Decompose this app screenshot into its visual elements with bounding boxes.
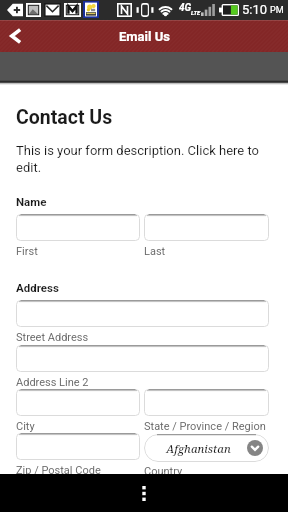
staticText: Last: [144, 245, 166, 258]
button[interactable]: [144, 214, 269, 241]
staticText: 5:10: [242, 2, 268, 17]
staticText: Country: [144, 465, 183, 478]
staticText: Address: [16, 281, 59, 294]
button[interactable]: [16, 433, 140, 460]
staticText: Street Address: [16, 331, 89, 344]
staticText: First: [16, 245, 38, 258]
staticText: Afghanistan: [150, 441, 247, 456]
staticText: City: [16, 420, 35, 433]
staticText: Email Us: [119, 29, 170, 44]
staticText: Zip / Postal Code: [16, 464, 101, 477]
button[interactable]: Afghanistan: [144, 434, 269, 462]
button[interactable]: [144, 389, 269, 416]
staticText: This is your form description. Click her…: [16, 143, 269, 176]
staticText: 4G: [179, 2, 192, 14]
button[interactable]: [16, 214, 140, 241]
button[interactable]: [16, 300, 269, 327]
staticText: LTE: [191, 9, 201, 16]
button[interactable]: [16, 345, 269, 372]
button[interactable]: [16, 389, 140, 416]
staticText: Name: [16, 195, 47, 208]
staticText: PM: [270, 5, 284, 16]
staticText: Address Line 2: [16, 376, 89, 389]
button[interactable]: Back: [0, 20, 30, 52]
button[interactable]: More options: [125, 474, 163, 512]
staticText: State / Province / Region: [144, 420, 266, 433]
staticText: Contact Us: [16, 106, 113, 129]
